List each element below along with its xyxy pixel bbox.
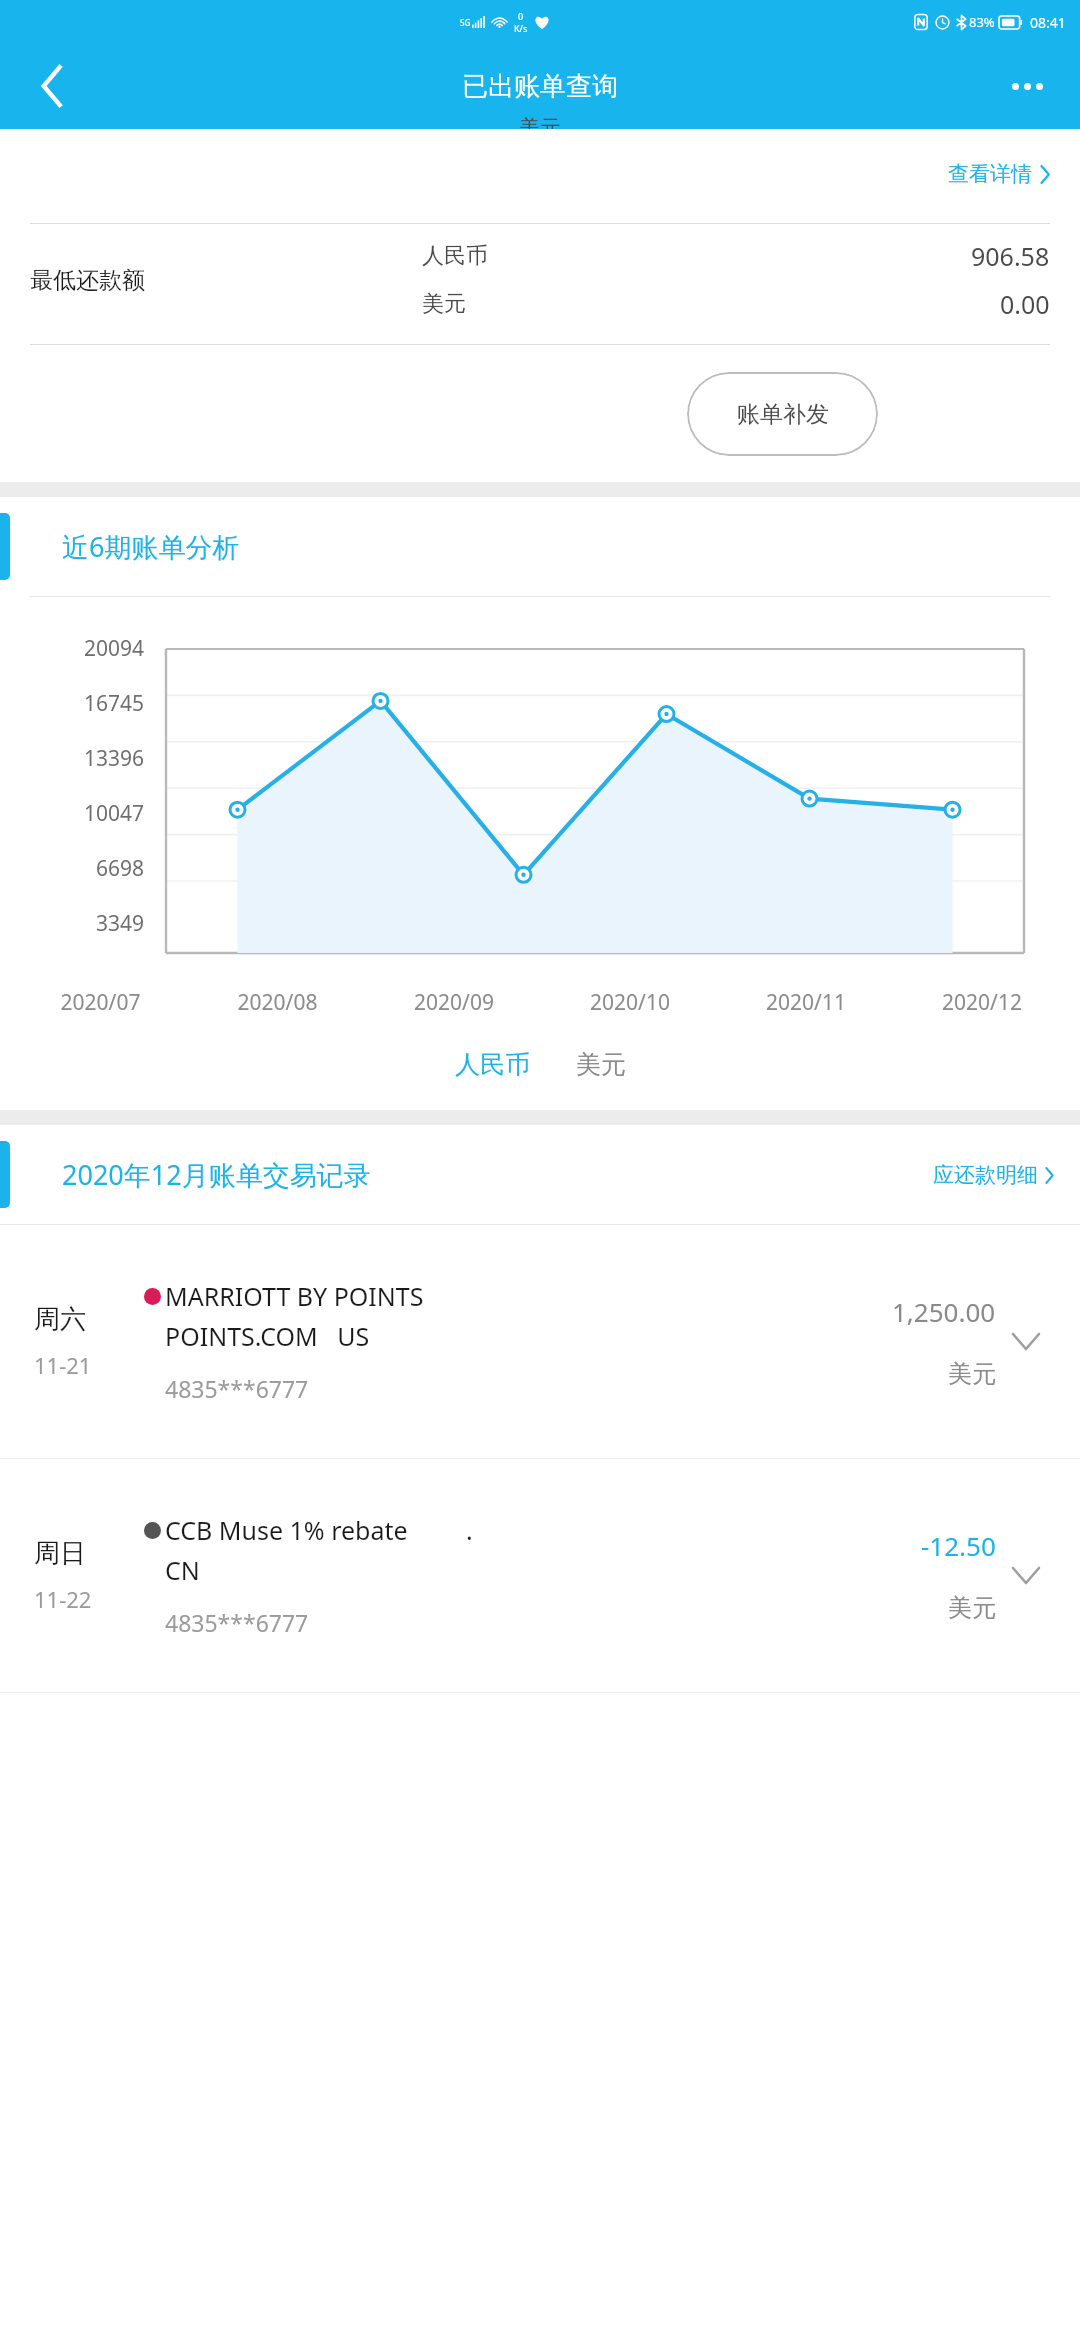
- button[interactable]: More options: [998, 57, 1056, 115]
- staticText: 2020/12: [894, 988, 1070, 1017]
- staticText: MARRIOTT BY POINTS: [165, 1279, 424, 1313]
- button[interactable]: Back: [22, 56, 82, 116]
- staticText: 账单补发: [737, 400, 829, 429]
- staticText: 美元: [948, 1359, 996, 1389]
- button[interactable]: 周六: [0, 1225, 1080, 1458]
- button[interactable]: 周日: [0, 1459, 1080, 1692]
- staticText: 83%: [969, 13, 995, 31]
- staticText: 人民币: [455, 1049, 530, 1080]
- staticText: 应还款明细: [933, 1162, 1038, 1188]
- button[interactable]: 人民币: [443, 1043, 542, 1086]
- staticText: 4835***6777: [165, 1607, 309, 1638]
- staticText: 10047: [14, 799, 144, 828]
- staticText: 2020/10: [542, 988, 718, 1017]
- staticText: 2020/09: [366, 988, 542, 1017]
- staticText: 人民币: [422, 242, 488, 270]
- button[interactable]: 美元: [564, 1043, 638, 1086]
- staticText: 1,250.00: [892, 1294, 996, 1329]
- staticText: 4835***6777: [165, 1373, 309, 1404]
- staticText: 0.00: [1000, 287, 1050, 321]
- staticText: POINTS.COM US: [165, 1319, 370, 1353]
- staticText: 周六: [34, 1303, 86, 1336]
- staticText: 906.58: [971, 239, 1050, 273]
- staticText: 最低还款额: [30, 266, 145, 295]
- staticText: -12.50: [921, 1528, 996, 1563]
- staticText: CCB Muse 1% rebate .: [165, 1513, 473, 1547]
- staticText: 3349: [14, 909, 144, 938]
- staticText: 0: [518, 10, 524, 22]
- staticText: CN: [165, 1553, 200, 1587]
- staticText: 查看详情: [948, 161, 1032, 187]
- staticText: 20094: [14, 634, 144, 663]
- staticText: 2020/07: [12, 988, 189, 1017]
- staticText: 2020/08: [189, 988, 366, 1017]
- button[interactable]: 应还款明细: [933, 1162, 1054, 1188]
- staticText: 08:41: [1030, 13, 1066, 32]
- staticText: 13396: [14, 744, 144, 773]
- staticText: 美元: [948, 1593, 996, 1623]
- staticText: 已出账单查询: [462, 70, 618, 103]
- staticText: 5G: [460, 17, 471, 28]
- staticText: 美元: [576, 1049, 626, 1080]
- button[interactable]: 账单补发: [687, 372, 878, 456]
- staticText: 2020年12月账单交易记录: [62, 1156, 371, 1193]
- staticText: 美元: [422, 290, 466, 318]
- staticText: 周日: [34, 1537, 86, 1570]
- staticText: K/s: [514, 22, 528, 34]
- staticText: 11-22: [34, 1584, 92, 1614]
- staticText: 近6期账单分析: [62, 528, 240, 565]
- staticText: 6698: [14, 854, 144, 883]
- staticText: 11-21: [34, 1350, 92, 1380]
- staticText: 美元: [519, 115, 561, 129]
- staticText: 2020/11: [718, 988, 894, 1017]
- staticText: 16745: [14, 689, 144, 718]
- button[interactable]: 查看详情: [0, 143, 1080, 205]
